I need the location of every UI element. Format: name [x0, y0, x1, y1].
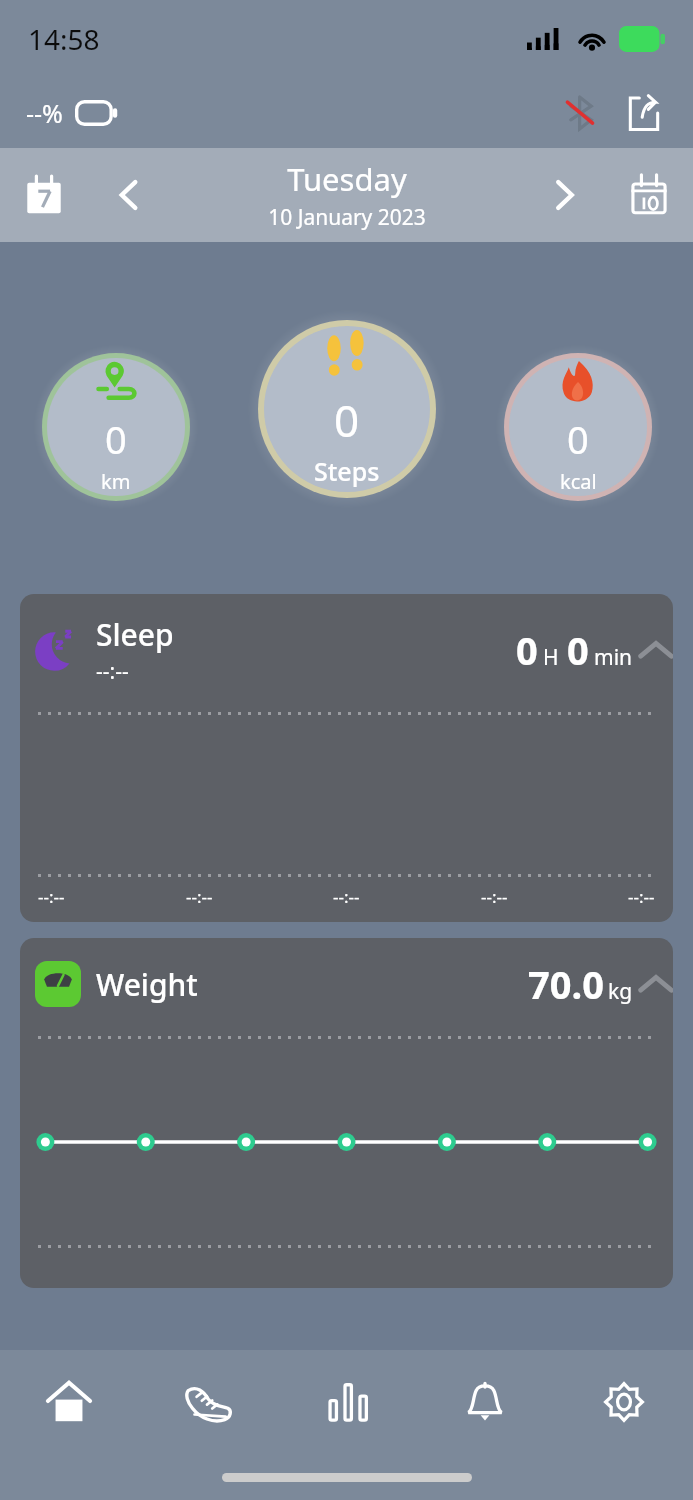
staticText: --:-- [628, 885, 655, 908]
button[interactable]: Week view [0, 148, 88, 242]
button[interactable]: Previous day [88, 148, 168, 242]
staticText: 14:58 [28, 20, 100, 58]
staticText: km [101, 468, 131, 495]
staticText: kg [608, 977, 633, 1006]
staticText: 10 January 2023 [268, 203, 426, 232]
staticText: --:-- [96, 657, 129, 686]
staticText: --:-- [38, 885, 65, 908]
staticText: Weight [96, 964, 198, 1005]
button[interactable]: Home [0, 1350, 138, 1454]
button[interactable]: Next day [525, 148, 605, 242]
button[interactable]: Notifications [415, 1350, 554, 1454]
staticText: --% [26, 96, 63, 130]
staticText: --:-- [333, 885, 360, 908]
button[interactable]: Weight [20, 938, 673, 1288]
button[interactable]: 0 [504, 353, 652, 501]
staticText: H [543, 643, 559, 672]
staticText: kcal [560, 468, 597, 495]
button[interactable]: 0 [42, 353, 190, 501]
staticText: 0 [567, 413, 589, 465]
button[interactable]: 0 [258, 320, 436, 498]
button[interactable]: Share [621, 90, 667, 136]
button[interactable]: Bluetooth disconnected [559, 91, 603, 135]
staticText: Tuesday [287, 158, 407, 200]
staticText: 0 [567, 624, 589, 676]
staticText: 70.0 [528, 958, 604, 1010]
staticText: 0 [334, 390, 360, 450]
button[interactable]: Activity [138, 1350, 276, 1454]
staticText: Steps [314, 454, 380, 488]
staticText: 0 [105, 413, 127, 465]
button[interactable]: Pick date [605, 148, 693, 242]
staticText: min [594, 643, 633, 672]
staticText: 0 [516, 624, 538, 676]
button[interactable]: Sleep [20, 614, 673, 686]
staticText: Sleep [96, 614, 174, 655]
button[interactable]: Sleep [20, 594, 673, 922]
button[interactable]: Weight [20, 958, 673, 1010]
staticText: --:-- [481, 885, 508, 908]
button[interactable]: Statistics [276, 1350, 415, 1454]
button[interactable]: Settings [554, 1350, 693, 1454]
staticText: --:-- [186, 885, 213, 908]
